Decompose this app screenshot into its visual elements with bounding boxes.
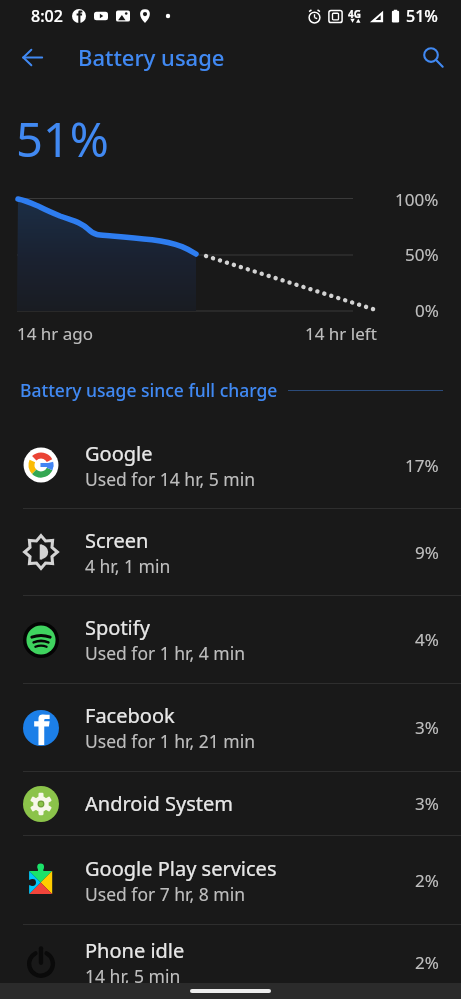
button[interactable]: Phone idle <box>0 925 461 999</box>
staticText: 8:02 <box>31 5 63 27</box>
staticText: Screen <box>85 527 149 554</box>
staticText: 3% <box>415 792 439 815</box>
staticText: 17% <box>405 454 439 477</box>
staticText: Used for 1 hr, 4 min <box>85 641 246 665</box>
staticText: 100% <box>395 188 439 211</box>
staticText: 9% <box>415 541 439 564</box>
button[interactable]: Google Play services <box>0 836 461 924</box>
button[interactable]: Search <box>411 35 455 79</box>
staticText: 4 hr, 1 min <box>85 554 171 578</box>
staticText: Used for 7 hr, 8 min <box>85 882 246 906</box>
staticText: 2% <box>415 951 439 974</box>
staticText: 50% <box>405 243 439 266</box>
staticText: Used for 14 hr, 5 min <box>85 467 256 491</box>
staticText: 0% <box>415 299 439 322</box>
staticText: Battery usage since full charge <box>20 378 278 402</box>
staticText: 14 hr left <box>305 322 377 345</box>
staticText: Used for 1 hr, 21 min <box>85 729 256 753</box>
button[interactable]: Android System <box>0 772 461 835</box>
staticText: Google Play services <box>85 855 277 882</box>
staticText: 4% <box>415 628 439 651</box>
button[interactable]: Screen <box>0 509 461 595</box>
staticText: 51% <box>16 107 109 171</box>
button[interactable]: Spotify <box>0 596 461 683</box>
staticText: 4G <box>348 7 361 21</box>
staticText: Google <box>85 440 153 467</box>
staticText: Phone idle <box>85 937 185 964</box>
staticText: 2% <box>415 869 439 892</box>
staticText: Spotify <box>85 614 150 641</box>
staticText: Battery usage <box>78 42 225 72</box>
staticText: Facebook <box>85 702 175 729</box>
staticText: 14 hr ago <box>17 322 94 345</box>
staticText: 3% <box>415 716 439 739</box>
button[interactable]: Facebook <box>0 684 461 771</box>
staticText: 51% <box>406 5 438 27</box>
staticText: 14 hr, 5 min <box>85 964 181 988</box>
button[interactable]: Google <box>0 422 461 508</box>
staticText: Android System <box>85 790 234 817</box>
button[interactable]: Back <box>10 35 54 79</box>
